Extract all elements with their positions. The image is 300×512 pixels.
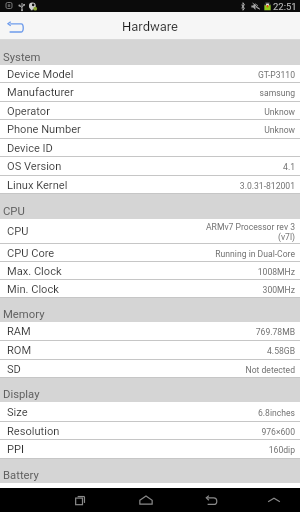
button[interactable]: Operator	[0, 102, 300, 120]
staticText: 4.1	[283, 162, 295, 172]
button[interactable]: Device ID	[0, 139, 300, 157]
button[interactable]: Manufacturer	[0, 83, 300, 102]
staticText: Not detected	[245, 365, 295, 375]
button[interactable]: Linux Kernel	[0, 176, 300, 194]
button[interactable]: RAM	[0, 322, 300, 341]
staticText: 769.78MB	[255, 327, 295, 337]
button[interactable]: Min. Clock	[0, 280, 300, 298]
staticText: Device ID	[7, 142, 53, 155]
button[interactable]: SD	[0, 360, 300, 378]
staticText: OS Version	[7, 160, 62, 173]
staticText: 160dip	[268, 445, 295, 455]
staticText: Hardware	[122, 19, 178, 34]
staticText: Size	[7, 406, 28, 419]
button[interactable]: ROM	[0, 341, 300, 360]
staticText: Battery	[3, 469, 39, 482]
staticText: Linux Kernel	[7, 179, 68, 192]
button[interactable]: Phone Number	[0, 120, 300, 139]
staticText: 976×600	[261, 427, 295, 437]
staticText: 3.0.31-812001	[239, 181, 295, 191]
staticText: PPI	[7, 443, 25, 456]
button[interactable]: Size	[0, 402, 300, 422]
staticText: CPU	[3, 205, 25, 218]
staticText: Min. Clock	[7, 283, 59, 296]
staticText: Resolution	[7, 425, 60, 438]
staticText: Operator	[7, 105, 50, 118]
button[interactable]: PPI	[0, 440, 300, 459]
staticText: Device Model	[7, 68, 74, 81]
staticText: Unknow	[264, 107, 295, 117]
staticText: 22:51	[273, 1, 297, 12]
button[interactable]: Back	[189, 488, 233, 512]
staticText: RAM	[7, 325, 31, 338]
button[interactable]: Recent apps	[58, 488, 102, 512]
staticText: Phone Number	[7, 123, 81, 136]
staticText: Running in Dual-Core	[215, 249, 295, 259]
staticText: Max. Clock	[7, 265, 62, 278]
staticText: 1008MHz	[257, 267, 295, 277]
staticText: Memory	[3, 308, 45, 321]
button[interactable]: CPU	[0, 219, 300, 244]
staticText: Manufacturer	[7, 86, 74, 99]
button[interactable]: Max. Clock	[0, 262, 300, 280]
staticText: ARMv7 Processor rev 3 (v7l)	[205, 222, 295, 242]
staticText: CPU Core	[7, 247, 55, 260]
button[interactable]: Resolution	[0, 422, 300, 440]
staticText: 300MHz	[262, 285, 295, 295]
staticText: System	[3, 51, 41, 64]
staticText: 6.8inches	[258, 408, 295, 418]
staticText: Unknow	[264, 125, 295, 135]
button[interactable]: Home	[124, 488, 168, 512]
button[interactable]: Navigate up	[0, 13, 31, 40]
staticText: Display	[3, 388, 40, 401]
staticText: GT-P3110	[257, 70, 295, 80]
staticText: samsung	[259, 88, 295, 98]
button[interactable]: Device Model	[0, 65, 300, 83]
staticText: CPU	[7, 225, 29, 238]
button[interactable]: Show notifications	[254, 488, 294, 512]
staticText: 4.58GB	[267, 346, 295, 356]
staticText: ROM	[7, 344, 32, 357]
staticText: SD	[7, 363, 21, 376]
button[interactable]: OS Version	[0, 157, 300, 176]
button[interactable]: CPU Core	[0, 244, 300, 262]
